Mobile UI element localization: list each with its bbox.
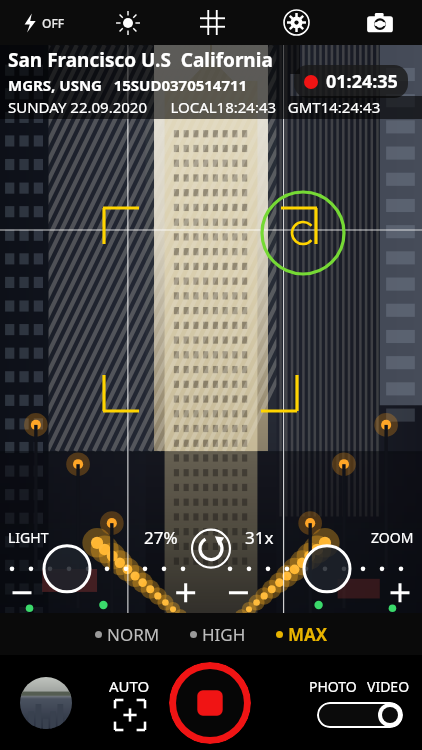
staticText: 31x — [245, 526, 274, 549]
button[interactable]: HIGH — [186, 619, 250, 650]
button[interactable]: NORM — [91, 619, 164, 650]
staticText: ZOOM — [371, 528, 414, 547]
staticText: MAX — [288, 623, 328, 646]
staticText: 01:24:35 — [326, 69, 398, 94]
staticText: SUNDAY 22.09.2020 LOCAL18:24:43 GMT14:24… — [8, 97, 381, 117]
button[interactable]: AUTO — [105, 672, 154, 734]
staticText: PHOTO — [309, 677, 357, 696]
button[interactable]: Reset — [190, 525, 232, 567]
button[interactable]: MAX — [272, 619, 332, 650]
button[interactable]: Settings — [254, 0, 338, 45]
button[interactable]: 01:24:35 — [294, 65, 408, 98]
button[interactable]: Light level — [0, 521, 180, 613]
button[interactable]: Switch camera — [338, 0, 422, 45]
staticText: MGRS, USNG 15SUD0370514711 — [8, 75, 248, 95]
button[interactable]: Stop recording — [169, 662, 251, 744]
staticText: HIGH — [202, 623, 246, 646]
staticText: VIDEO — [367, 677, 410, 696]
button[interactable]: Exposure — [85, 0, 170, 45]
staticText: OFF — [42, 15, 65, 31]
button[interactable]: Gallery — [20, 677, 72, 729]
button[interactable]: Grid — [170, 0, 254, 45]
button[interactable]: Zoom level — [242, 521, 422, 613]
staticText: 27% — [144, 526, 178, 549]
button[interactable]: Flash off — [0, 0, 85, 45]
button[interactable]: PHOTO — [309, 677, 410, 728]
staticText: LIGHT — [8, 528, 49, 547]
staticText: San Francisco U.S California — [8, 47, 273, 73]
staticText: NORM — [107, 623, 160, 646]
staticText: AUTO — [109, 676, 150, 696]
